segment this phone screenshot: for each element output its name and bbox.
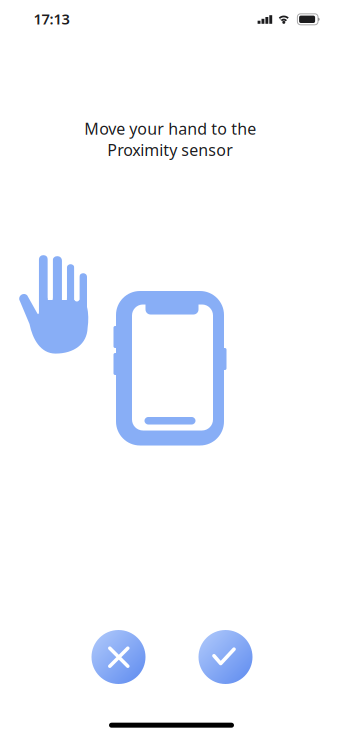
staticText: Move your hand to the Proximity sensor bbox=[84, 118, 256, 160]
button[interactable]: Cancel bbox=[91, 630, 145, 684]
staticText: 17:13 bbox=[33, 9, 69, 28]
button[interactable]: Confirm bbox=[198, 630, 252, 684]
